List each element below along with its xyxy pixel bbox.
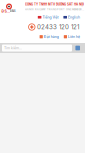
staticText: Tiếng Việt (42, 15, 58, 19)
staticText: Tìm kiếm... (4, 46, 22, 50)
button[interactable]: English (63, 15, 80, 19)
button[interactable]: Vietnam Railways home (0, 0, 17, 13)
button[interactable]: Liên hệ (64, 35, 80, 39)
button[interactable]: Search (75, 46, 80, 50)
staticText: CÔNG TY TNHH MTV ĐƯỜNG SẮT HÀ NỘI (25, 3, 84, 6)
staticText: Đặt hàng (44, 35, 59, 39)
staticText: HANOI RAILWAY TRANSPORT ONE MEMBER CO., … (25, 8, 84, 11)
staticText: 02433 120 121 (37, 23, 79, 31)
button[interactable]: Tiếng Việt (38, 15, 58, 19)
button[interactable]: Đặt hàng (40, 35, 59, 39)
staticText: English (68, 15, 80, 19)
staticText: ĐSVN (1, 9, 9, 13)
staticText: Liên hệ (68, 35, 80, 39)
staticText: RAIL (9, 9, 16, 13)
